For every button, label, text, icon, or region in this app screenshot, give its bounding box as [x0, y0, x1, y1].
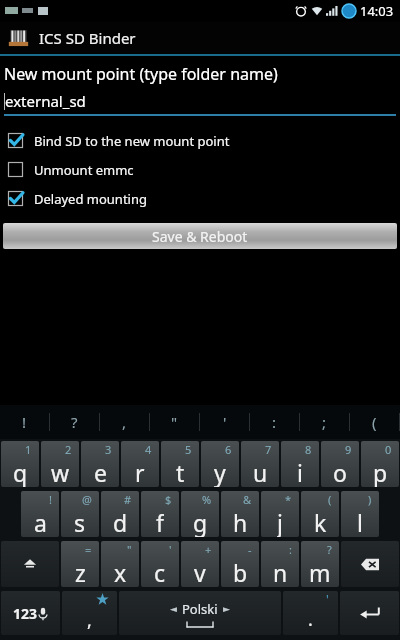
staticText: 9: [345, 442, 352, 457]
staticText: 3: [105, 442, 112, 457]
staticText: i: [297, 457, 303, 487]
staticText: k: [314, 507, 327, 537]
button[interactable]: Backspace: [340, 539, 400, 589]
button[interactable]: !: [20, 489, 60, 539]
staticText: v: [194, 557, 206, 587]
button[interactable]: Comma and settings: [61, 589, 118, 637]
staticText: 0: [385, 442, 392, 457]
button[interactable]: external_sd: [4, 91, 396, 116]
staticText: 5: [185, 442, 192, 457]
button[interactable]: 6: [200, 439, 240, 489]
staticText: (: [328, 492, 332, 507]
button[interactable]: ): [340, 489, 380, 539]
staticText: p: [373, 457, 388, 487]
button[interactable]: ICS SD Binder: [0, 22, 400, 54]
button[interactable]: 1: [0, 439, 40, 489]
button[interactable]: @: [60, 489, 100, 539]
button[interactable]: Shift: [0, 539, 60, 589]
staticText: d: [113, 507, 128, 537]
staticText: x: [114, 557, 127, 587]
staticText: y: [214, 457, 226, 487]
button[interactable]: ;: [300, 405, 349, 439]
button[interactable]: ◄: [118, 589, 282, 637]
button[interactable]: :: [250, 405, 299, 439]
staticText: ": [171, 412, 178, 432]
staticText: *: [285, 492, 292, 507]
staticText: ,: [87, 608, 92, 633]
staticText: g: [193, 507, 208, 537]
button[interactable]: 0: [360, 439, 400, 489]
button[interactable]: -: [220, 539, 260, 589]
button[interactable]: !: [0, 405, 400, 439]
staticText: t: [176, 457, 185, 487]
button[interactable]: 7: [240, 439, 280, 489]
staticText: external_sd: [5, 91, 86, 111]
staticText: 6: [225, 442, 232, 457]
staticText: ►: [223, 604, 230, 614]
button[interactable]: =: [60, 539, 100, 589]
staticText: 123: [13, 604, 38, 623]
staticText: @: [82, 492, 92, 507]
staticText: ?: [71, 412, 78, 432]
button[interactable]: ": [100, 539, 140, 589]
staticText: Unmount emmc: [34, 161, 134, 179]
button[interactable]: ?: [300, 539, 340, 589]
button[interactable]: Unmount emmc: [0, 155, 400, 184]
staticText: 8: [305, 442, 312, 457]
button[interactable]: 9: [320, 439, 360, 489]
button[interactable]: Enter: [339, 589, 400, 637]
staticText: u: [253, 457, 268, 487]
staticText: c: [154, 557, 166, 587]
button[interactable]: 4: [120, 439, 160, 489]
staticText: Bind SD to the new mount point: [34, 132, 230, 150]
button[interactable]: ': [140, 539, 180, 589]
button[interactable]: &: [220, 489, 260, 539]
staticText: =: [85, 542, 92, 557]
button[interactable]: ,: [100, 405, 149, 439]
staticText: ': [169, 542, 172, 557]
button[interactable]: ?: [50, 405, 99, 439]
staticText: a: [34, 507, 47, 537]
button[interactable]: 3: [80, 439, 120, 489]
staticText: q: [13, 457, 28, 487]
staticText: Save & Reboot: [152, 227, 248, 246]
staticText: (: [372, 412, 377, 432]
button[interactable]: :: [260, 539, 300, 589]
staticText: ": [127, 542, 132, 557]
staticText: z: [75, 557, 86, 587]
button[interactable]: ": [150, 405, 199, 439]
staticText: ': [223, 412, 227, 432]
staticText: 2: [65, 442, 72, 457]
button[interactable]: *: [260, 489, 300, 539]
button[interactable]: ': [200, 405, 249, 439]
button[interactable]: (: [300, 489, 340, 539]
staticText: ?: [327, 542, 332, 557]
staticText: j: [277, 507, 283, 537]
button[interactable]: 123: [0, 589, 61, 637]
staticText: &: [243, 492, 252, 507]
button[interactable]: Delayed mounting: [0, 184, 400, 213]
button[interactable]: (: [350, 405, 399, 439]
button[interactable]: %: [180, 489, 220, 539]
staticText: 1: [25, 442, 32, 457]
staticText: $: [165, 492, 172, 507]
button[interactable]: 8: [280, 439, 320, 489]
button[interactable]: Period: [282, 589, 339, 637]
button[interactable]: 2: [40, 439, 80, 489]
staticText: w: [51, 457, 70, 487]
button[interactable]: $: [140, 489, 180, 539]
staticText: 4: [145, 442, 152, 457]
staticText: h: [233, 507, 248, 537]
button[interactable]: +: [180, 539, 220, 589]
staticText: m: [309, 557, 331, 587]
button[interactable]: 5: [160, 439, 200, 489]
staticText: r: [135, 457, 145, 487]
staticText: New mount point (type folder name): [4, 63, 278, 85]
button[interactable]: #: [100, 489, 140, 539]
staticText: +: [205, 542, 212, 557]
staticText: o: [333, 457, 347, 487]
button[interactable]: !: [0, 405, 49, 439]
staticText: !: [49, 492, 52, 507]
button[interactable]: Save & Reboot: [3, 223, 397, 249]
button[interactable]: Bind SD to the new mount point: [0, 126, 400, 155]
